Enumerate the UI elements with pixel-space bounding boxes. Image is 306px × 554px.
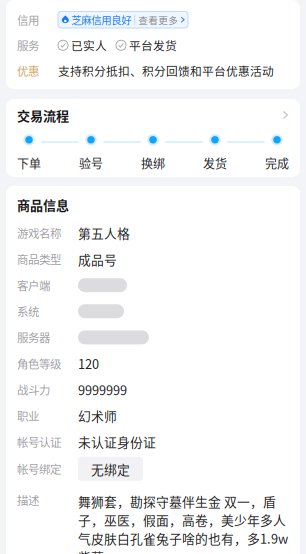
button[interactable]: 芝麻信用良好	[58, 11, 188, 28]
staticText: 战斗力	[17, 381, 50, 398]
staticText: 验号	[79, 155, 103, 172]
staticText: 系统	[17, 303, 39, 320]
staticText: 游戏名称	[17, 225, 61, 241]
staticText: 商品信息	[17, 195, 69, 214]
staticText: 幻术师	[78, 406, 117, 425]
staticText: 信用	[17, 11, 39, 28]
staticText: 第五人格	[78, 224, 130, 242]
staticText: 支持积分抵扣、积分回馈和平台优惠活动	[58, 62, 274, 79]
staticText: 服务	[17, 37, 39, 53]
staticText: 未认证身份证	[78, 432, 156, 451]
staticText: 已实人	[71, 37, 107, 54]
staticText: 9999999	[78, 380, 127, 399]
staticText: 帐号绑定	[17, 460, 61, 477]
staticText: 商品类型	[17, 251, 61, 267]
staticText: 帐号认证	[17, 433, 61, 450]
staticText: 发货	[203, 155, 227, 172]
staticText: 换绑	[141, 155, 165, 172]
staticText: 平台发货	[129, 37, 177, 54]
staticText: 查看更多	[138, 13, 178, 27]
button[interactable]: 交易流程	[6, 99, 300, 177]
staticText: 芝麻信用良好	[71, 12, 131, 27]
staticText: 下单	[17, 155, 41, 172]
staticText: 无绑定	[91, 460, 130, 478]
staticText: 120	[78, 354, 99, 373]
staticText: 客户端	[17, 277, 50, 293]
staticText: 成品号	[78, 250, 117, 268]
staticText: 舞狮套，勘探守墓伴生金 双一，盾子，巫医，假面，高卷，美少年多人气皮肤白孔雀兔子…	[78, 492, 288, 554]
staticText: 描述	[17, 492, 39, 508]
staticText: 职业	[17, 407, 39, 424]
staticText: 服务器	[17, 329, 50, 346]
staticText: 完成	[265, 155, 289, 172]
staticText: 交易流程	[17, 105, 69, 124]
staticText: 优惠	[17, 62, 39, 79]
staticText: 角色等级	[17, 355, 61, 372]
